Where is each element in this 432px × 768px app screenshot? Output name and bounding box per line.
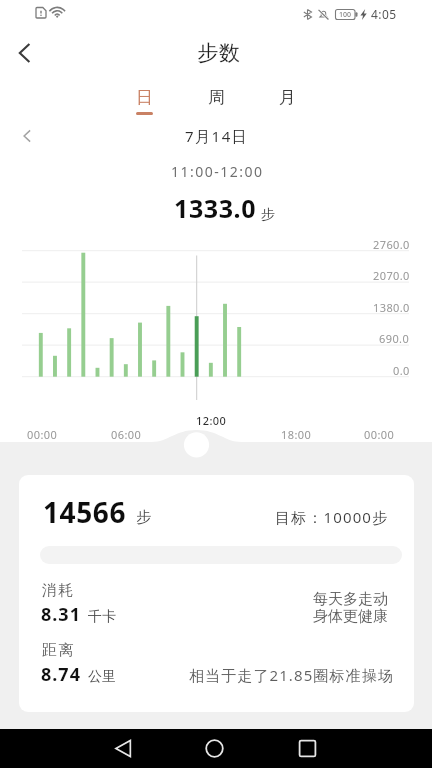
staticText: 周 bbox=[208, 87, 225, 108]
staticText: 身体更健康 bbox=[313, 607, 388, 626]
staticText: 8.74 bbox=[41, 662, 81, 687]
staticText: 千卡 bbox=[88, 608, 116, 626]
button[interactable]: Recents bbox=[287, 729, 327, 768]
staticText: 11:00-12:00 bbox=[171, 162, 264, 181]
staticText: 18:00 bbox=[281, 427, 312, 442]
staticText: 距离 bbox=[42, 641, 75, 660]
staticText: 14566 bbox=[43, 493, 127, 531]
staticText: 7月14日 bbox=[185, 126, 249, 146]
staticText: 1333.0 bbox=[174, 191, 257, 225]
staticText: 0.0 bbox=[393, 363, 410, 378]
staticText: 步 bbox=[136, 508, 151, 527]
staticText: 2070.0 bbox=[373, 268, 410, 283]
staticText: 12:00 bbox=[196, 413, 227, 428]
staticText: 月 bbox=[279, 87, 296, 108]
staticText: 4:05 bbox=[371, 6, 397, 22]
button[interactable]: Back bbox=[5, 38, 45, 68]
staticText: 00:00 bbox=[27, 427, 58, 442]
staticText: 日 bbox=[136, 87, 153, 108]
staticText: 2760.0 bbox=[373, 237, 410, 252]
staticText: 步 bbox=[261, 206, 275, 224]
staticText: 1380.0 bbox=[373, 300, 410, 315]
staticText: 目标：10000步 bbox=[275, 507, 389, 527]
staticText: 06:00 bbox=[111, 427, 142, 442]
staticText: 每天多走动 bbox=[313, 590, 388, 609]
staticText: 8.31 bbox=[41, 602, 81, 627]
button[interactable]: Previous day bbox=[11, 124, 43, 148]
staticText: 00:00 bbox=[364, 427, 395, 442]
button[interactable]: Back bbox=[103, 729, 143, 768]
staticText: 公里 bbox=[88, 668, 116, 686]
button[interactable]: 月 bbox=[268, 87, 306, 119]
staticText: 相当于走了21.85圈标准操场 bbox=[189, 665, 394, 685]
staticText: 步数 bbox=[197, 40, 240, 66]
button[interactable]: Home bbox=[194, 729, 234, 768]
staticText: 消耗 bbox=[42, 581, 75, 600]
button[interactable]: 日 bbox=[125, 87, 163, 119]
staticText: 100 bbox=[339, 10, 352, 20]
staticText: 690.0 bbox=[379, 331, 410, 346]
button[interactable]: 周 bbox=[197, 87, 235, 119]
